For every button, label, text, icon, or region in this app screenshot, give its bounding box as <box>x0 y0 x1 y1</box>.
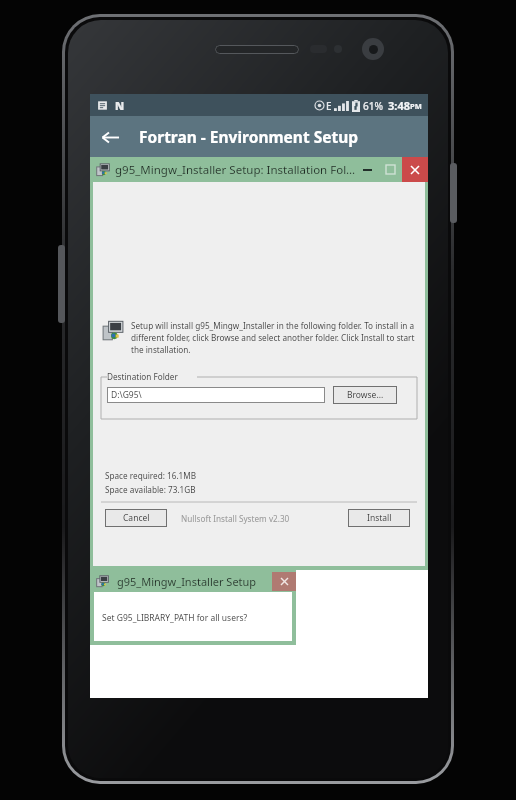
staticText: Set G95_LIBRARY_PATH for all users? <box>102 612 248 624</box>
staticText: Install <box>367 512 392 524</box>
staticText: Nullsoft Install System v2.30 <box>181 513 290 524</box>
staticText: different folder, click Browse and selec… <box>131 332 415 343</box>
button[interactable]: D:\G95\ <box>107 387 325 403</box>
staticText: Space available: 73.1GB <box>105 484 196 495</box>
staticText: Destination Folder <box>107 371 178 382</box>
staticText: Setup will install g95_Mingw_Installer i… <box>131 320 415 331</box>
button[interactable]: Install <box>348 509 410 527</box>
button[interactable]: Cancel <box>105 509 167 527</box>
staticText: D:\G95\ <box>111 389 142 401</box>
staticText: g95_Mingw_Installer Setup: Installation … <box>115 162 356 178</box>
staticText: E <box>326 99 332 113</box>
staticText: the installation. <box>131 344 191 355</box>
button[interactable]: Back <box>90 117 130 157</box>
button[interactable]: Close <box>402 157 428 182</box>
staticText: Space required: 16.1MB <box>105 470 197 481</box>
staticText: Browse... <box>347 389 384 401</box>
staticText: g95_Mingw_Installer Setup <box>117 574 272 589</box>
staticText: N <box>115 98 125 113</box>
staticText: Cancel <box>123 512 150 524</box>
staticText: PM <box>410 101 422 111</box>
button[interactable]: Minimize <box>356 157 378 182</box>
button[interactable]: Close <box>272 572 296 591</box>
staticText: 61% <box>363 99 383 113</box>
button[interactable]: Browse... <box>333 386 397 404</box>
staticText: Fortran - Environment Setup <box>139 126 359 147</box>
button[interactable]: Maximize <box>378 157 402 182</box>
staticText: 3:48 <box>388 98 410 113</box>
